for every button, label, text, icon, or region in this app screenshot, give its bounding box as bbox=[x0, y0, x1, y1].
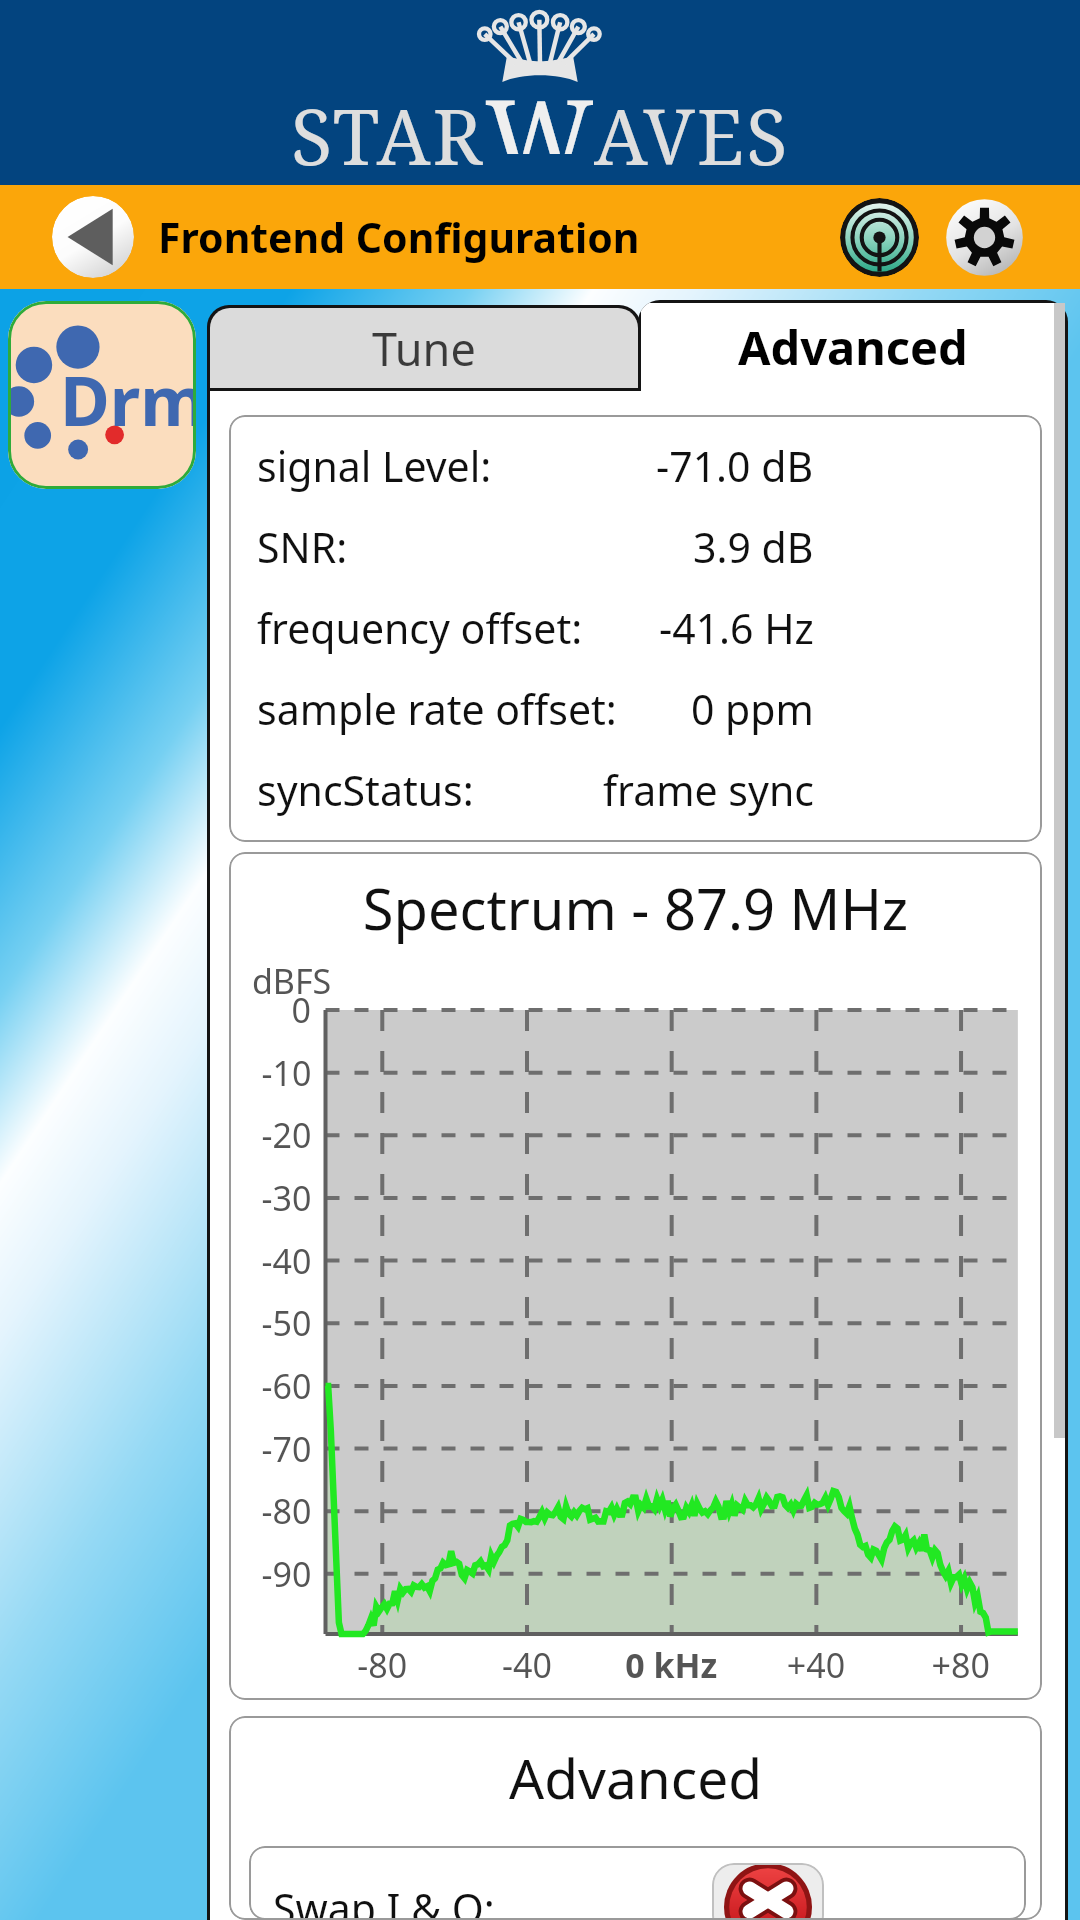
staticText: Spectrum - 87.9 MHz bbox=[229, 870, 1042, 946]
staticText: signal Level: bbox=[257, 438, 492, 494]
button[interactable]: DRM bbox=[8, 301, 196, 489]
staticText: Advanced bbox=[229, 1740, 1042, 1815]
button[interactable]: Settings bbox=[945, 198, 1024, 277]
staticText: sample rate offset: bbox=[257, 681, 617, 737]
staticText: 3.9 dB bbox=[693, 519, 814, 575]
button[interactable]: Antenna signal bbox=[840, 198, 919, 277]
staticText: frequency offset: bbox=[257, 600, 583, 656]
staticText: Tune bbox=[372, 318, 476, 379]
button[interactable]: Swap I & Q: bbox=[249, 1846, 1026, 1920]
button[interactable]: Back bbox=[52, 196, 134, 278]
staticText: Advanced bbox=[738, 315, 968, 379]
staticText: 0 ppm bbox=[691, 681, 814, 737]
staticText: frame sync bbox=[603, 762, 814, 818]
staticText: -41.6 Hz bbox=[659, 600, 814, 656]
staticText: W bbox=[485, 64, 594, 154]
staticText: STAR bbox=[291, 84, 485, 174]
button[interactable]: Advanced bbox=[641, 303, 1065, 391]
staticText: Frontend Configuration bbox=[158, 209, 640, 265]
staticText: syncStatus: bbox=[257, 762, 474, 818]
staticText: AVES bbox=[594, 84, 790, 174]
staticText: SNR: bbox=[257, 519, 348, 575]
staticText: Drm bbox=[60, 353, 196, 446]
button[interactable]: Tune bbox=[210, 308, 638, 388]
staticText: -71.0 dB bbox=[656, 438, 814, 494]
staticText: Swap I & Q: bbox=[273, 1880, 495, 1920]
